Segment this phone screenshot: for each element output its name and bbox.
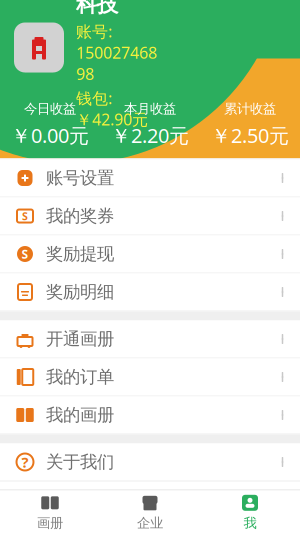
staticText: ￥2.20元 xyxy=(111,122,189,148)
staticText: S xyxy=(21,246,28,262)
staticText: 奖励明细 xyxy=(46,281,114,303)
button[interactable]: S xyxy=(0,235,300,273)
staticText: 得众邦科技 xyxy=(76,0,139,18)
staticText: ￥2.50元 xyxy=(211,122,289,148)
staticText: 钱包:￥42.90元 xyxy=(76,87,148,130)
staticText: 我的订单 xyxy=(46,366,114,388)
button[interactable]: 企业 xyxy=(100,490,200,533)
button[interactable]: 奖励明细 xyxy=(0,273,300,311)
staticText: 我 xyxy=(243,515,256,531)
staticText: 账号设置 xyxy=(46,167,114,189)
staticText: 我的画册 xyxy=(46,404,114,426)
staticText: 关于我们 xyxy=(46,451,114,473)
button[interactable]: S xyxy=(0,197,300,235)
staticText: 今日收益 xyxy=(24,100,76,117)
staticText: ? xyxy=(21,452,28,472)
staticText: 累计收益 xyxy=(224,100,276,117)
button[interactable]: 账号设置 xyxy=(0,159,300,197)
button[interactable]: 我的画册 xyxy=(0,396,300,434)
staticText: 开通画册 xyxy=(46,328,114,350)
staticText: 本月收益 xyxy=(124,100,176,117)
staticText: ￥0.00元 xyxy=(11,122,89,148)
button[interactable]: 我 xyxy=(200,490,300,533)
staticText: S xyxy=(22,209,28,223)
staticText: 账号:15002746898 xyxy=(76,21,157,84)
staticText: 企业 xyxy=(137,515,163,531)
staticText: 画册 xyxy=(37,515,63,531)
button[interactable]: ? xyxy=(0,443,300,481)
button[interactable]: 我的订单 xyxy=(0,358,300,396)
staticText: 奖励提现 xyxy=(46,243,114,265)
button[interactable]: 开通画册 xyxy=(0,320,300,358)
staticText: 我的奖券 xyxy=(46,205,114,227)
button[interactable]: 画册 xyxy=(0,490,100,533)
